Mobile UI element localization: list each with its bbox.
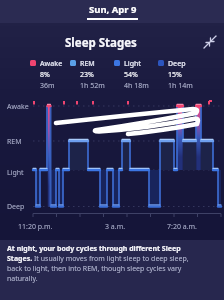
- staticText: 1h 14m: [168, 81, 193, 91]
- staticText: 54%: [124, 70, 138, 80]
- button[interactable]: Light: [114, 59, 149, 91]
- button[interactable]: Awake: [30, 59, 63, 91]
- staticText: Deep: [168, 59, 186, 69]
- staticText: 3 a.m.: [105, 222, 126, 232]
- staticText: 23%: [80, 70, 94, 80]
- staticText: Awake: [40, 59, 63, 69]
- button[interactable]: Deep: [158, 59, 193, 91]
- staticText: Light: [124, 59, 142, 69]
- button[interactable]: REM: [70, 59, 105, 91]
- button[interactable]: [201, 33, 219, 51]
- staticText: Deep: [7, 202, 25, 212]
- staticText: 4h 18m: [124, 81, 149, 91]
- staticText: Light: [7, 168, 24, 178]
- staticText: REM: [7, 137, 22, 147]
- staticText: 36m: [40, 81, 55, 91]
- staticText: At night, your body cycles through diffe…: [7, 244, 189, 284]
- staticText: REM: [80, 59, 95, 69]
- button[interactable]: Sun, Apr 9: [0, 0, 224, 23]
- staticText: 1h 52m: [80, 81, 105, 91]
- staticText: 15%: [168, 70, 182, 80]
- staticText: 7:20 a.m.: [167, 222, 197, 232]
- staticText: Awake: [7, 102, 29, 112]
- staticText: Sleep Stages: [65, 35, 137, 51]
- staticText: Sun, Apr 9: [89, 3, 137, 16]
- staticText: 8%: [40, 70, 50, 80]
- staticText: 11:20 p.m.: [18, 222, 53, 232]
